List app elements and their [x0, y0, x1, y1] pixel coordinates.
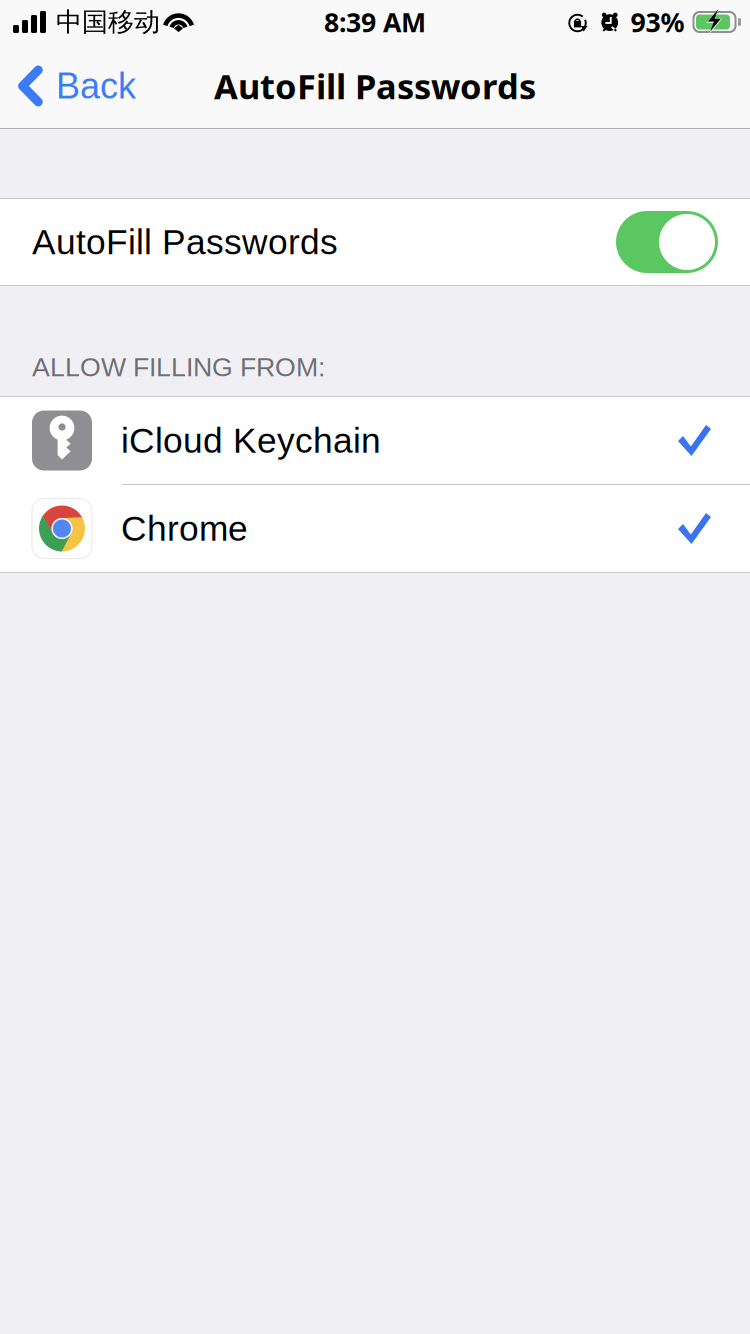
button[interactable]: iCloud Keychain [0, 397, 750, 484]
staticText: Back [56, 66, 136, 106]
button[interactable]: Back [0, 44, 150, 128]
button[interactable]: Chrome [0, 485, 750, 572]
staticText: AutoFill Passwords [214, 63, 536, 109]
staticText: AutoFill Passwords [32, 222, 338, 262]
staticText: 中国移动 [56, 6, 160, 38]
staticText: 8:39 AM [324, 4, 426, 40]
staticText: 93% [630, 4, 684, 40]
staticText: ALLOW FILLING FROM: [32, 352, 325, 382]
staticText: Chrome [121, 509, 248, 548]
staticText: iCloud Keychain [121, 421, 381, 460]
button[interactable]: AutoFill Passwords [0, 199, 750, 285]
